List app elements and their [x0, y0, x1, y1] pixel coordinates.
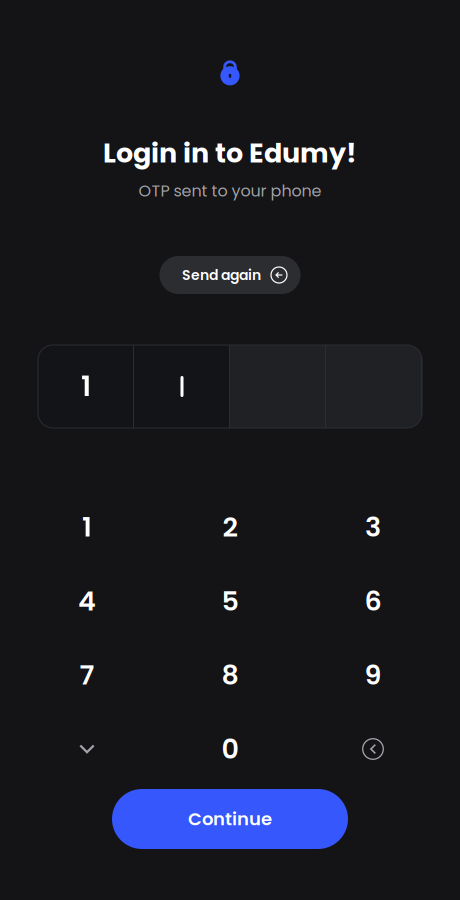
staticText: 9 — [364, 656, 381, 694]
button[interactable]: 4 — [15, 564, 158, 638]
button[interactable]: First digit, 1 — [38, 345, 134, 428]
button[interactable]: 6 — [301, 564, 444, 638]
staticText: 0 — [221, 730, 238, 768]
button[interactable]: Delete — [301, 712, 444, 786]
button[interactable]: 2 — [158, 490, 301, 564]
staticText: 3 — [365, 508, 381, 546]
staticText: 1 — [81, 367, 91, 406]
staticText: 2 — [222, 508, 237, 546]
staticText: 6 — [364, 582, 381, 620]
button[interactable]: 3 — [301, 490, 444, 564]
button[interactable]: 9 — [301, 638, 444, 712]
staticText: Login in to Edumy! — [103, 134, 357, 172]
button[interactable]: Send again — [159, 256, 300, 294]
staticText: 8 — [221, 656, 238, 694]
staticText: 4 — [78, 582, 96, 620]
staticText: Send again — [182, 265, 261, 285]
button[interactable]: 8 — [158, 638, 301, 712]
button[interactable]: Hide keyboard — [15, 712, 158, 786]
button[interactable]: Second digit, empty — [134, 345, 230, 428]
staticText: Continue — [188, 806, 272, 832]
staticText: OTP sent to your phone — [138, 180, 321, 202]
staticText: 5 — [221, 582, 238, 620]
button[interactable]: Continue — [112, 789, 348, 849]
button[interactable]: 7 — [15, 638, 158, 712]
staticText: 7 — [79, 656, 94, 694]
button[interactable]: 5 — [158, 564, 301, 638]
button[interactable]: 0 — [158, 712, 301, 786]
staticText: 1 — [82, 508, 92, 546]
button[interactable]: 1 — [15, 490, 158, 564]
